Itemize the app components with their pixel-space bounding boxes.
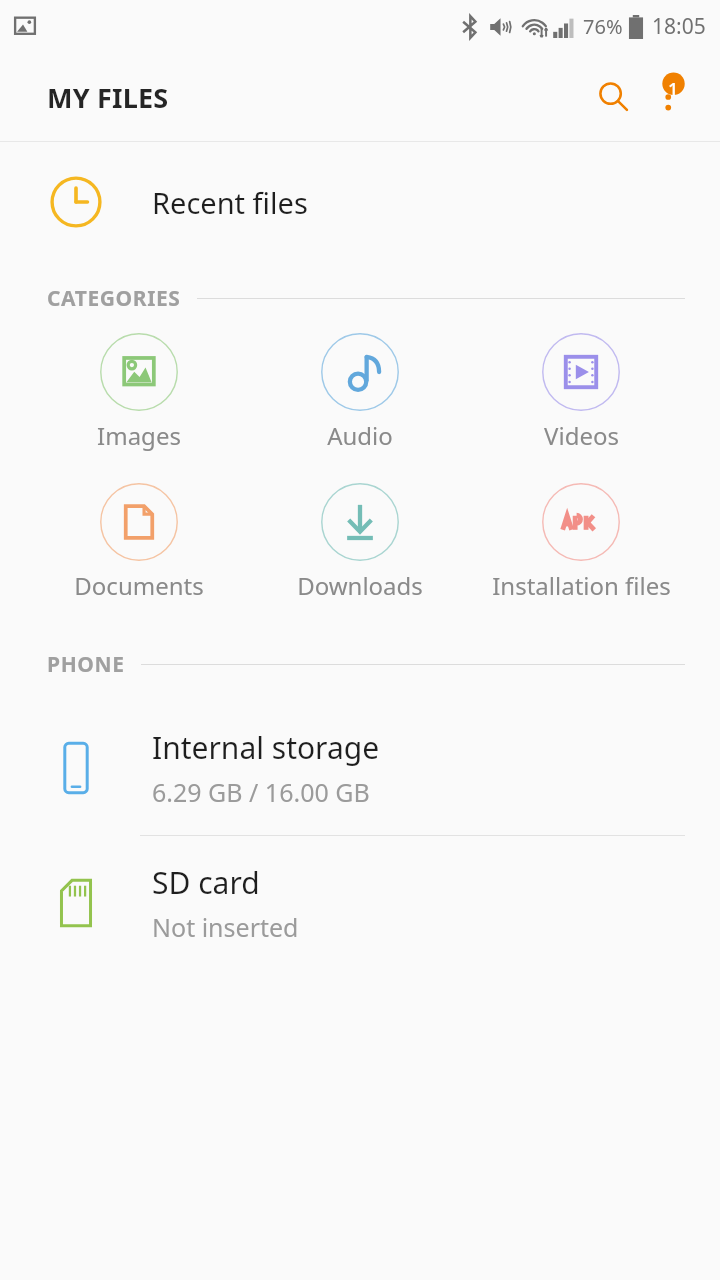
staticText: 6.29 GB / 16.00 GB <box>152 775 370 809</box>
button[interactable]: Audio <box>260 331 460 454</box>
staticText: CATEGORIES <box>47 284 181 313</box>
button[interactable]: Recent files <box>0 142 720 262</box>
staticText: Documents <box>74 569 204 602</box>
staticText: Images <box>97 419 181 452</box>
staticText: SD card <box>152 862 260 903</box>
staticText: Audio <box>327 419 393 452</box>
staticText: 18:05 <box>652 12 706 41</box>
button[interactable]: More options <box>642 69 698 125</box>
button[interactable]: Installation files <box>481 481 681 604</box>
staticText: Downloads <box>297 569 423 602</box>
button[interactable]: Documents <box>39 481 239 604</box>
staticText: PHONE <box>47 650 125 679</box>
button[interactable]: Downloads <box>260 481 460 604</box>
staticText: Internal storage <box>152 727 380 768</box>
button[interactable]: Images <box>39 331 239 454</box>
staticText: MY FILES <box>47 79 169 116</box>
button[interactable]: SD card <box>0 836 720 970</box>
staticText: 76% <box>583 13 623 40</box>
staticText: Videos <box>544 419 619 452</box>
button[interactable]: Internal storage <box>0 701 720 835</box>
staticText: Installation files <box>492 569 671 602</box>
button[interactable]: Search <box>586 69 642 125</box>
staticText: Not inserted <box>152 910 299 944</box>
button[interactable]: Videos <box>481 331 681 454</box>
staticText: 1 <box>668 77 679 102</box>
staticText: Recent files <box>152 183 308 222</box>
